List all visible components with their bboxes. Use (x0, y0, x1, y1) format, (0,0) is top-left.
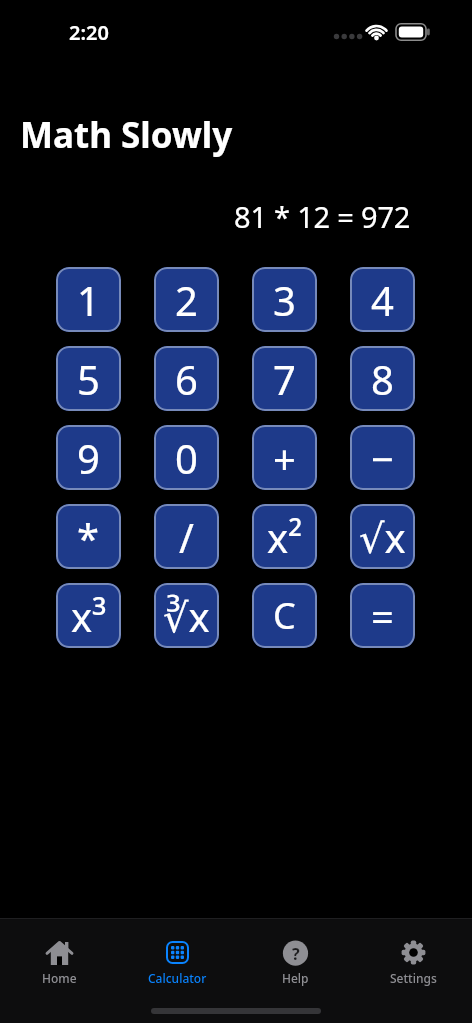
button[interactable]: = (350, 583, 415, 648)
button[interactable]: ? (236, 939, 354, 986)
button[interactable]: 2 (154, 267, 219, 332)
button[interactable]: √x (350, 504, 415, 569)
staticText: 3 (273, 273, 296, 327)
staticText: = (371, 589, 394, 643)
button[interactable]: Settings (354, 939, 472, 986)
staticText: 2 (175, 273, 198, 327)
staticText: √x (359, 510, 406, 564)
staticText: − (371, 431, 394, 485)
button[interactable]: 3 (252, 267, 317, 332)
button[interactable]: 5 (56, 346, 121, 411)
staticText: / (179, 510, 194, 564)
staticText: C (273, 591, 296, 640)
staticText: 4 (371, 273, 394, 327)
staticText: * (77, 510, 100, 564)
staticText: Settings (390, 970, 437, 986)
button[interactable]: + (252, 425, 317, 490)
staticText: x³ (71, 589, 107, 643)
staticText: 5 (77, 352, 100, 406)
staticText: 0 (175, 431, 198, 485)
button[interactable]: ∛x (154, 583, 219, 648)
button[interactable]: 8 (350, 346, 415, 411)
staticText: 9 (77, 431, 100, 485)
staticText: 2:20 (69, 19, 109, 46)
button[interactable]: 1 (56, 267, 121, 332)
staticText: 1 (77, 273, 100, 327)
staticText: 8 (371, 352, 394, 406)
staticText: ∛x (163, 589, 210, 643)
staticText: x² (267, 510, 303, 564)
staticText: ? (292, 943, 300, 965)
button[interactable]: 6 (154, 346, 219, 411)
button[interactable]: 0 (154, 425, 219, 490)
button[interactable]: x² (252, 504, 317, 569)
button[interactable]: Home (0, 939, 118, 986)
staticText: Calculator (148, 970, 207, 986)
button[interactable]: 7 (252, 346, 317, 411)
staticText: 7 (273, 352, 296, 406)
staticText: + (273, 431, 296, 485)
button[interactable]: 4 (350, 267, 415, 332)
staticText: 81 * 12 = 972 (234, 197, 411, 236)
staticText: Help (282, 970, 309, 986)
button[interactable]: − (350, 425, 415, 490)
staticText: Home (42, 970, 77, 986)
staticText: Math Slowly (20, 111, 233, 159)
button[interactable]: x³ (56, 583, 121, 648)
button[interactable]: C (252, 583, 317, 648)
button[interactable]: 9 (56, 425, 121, 490)
button[interactable]: Calculator (118, 939, 236, 986)
button[interactable]: / (154, 504, 219, 569)
staticText: 6 (175, 352, 198, 406)
button[interactable]: * (56, 504, 121, 569)
